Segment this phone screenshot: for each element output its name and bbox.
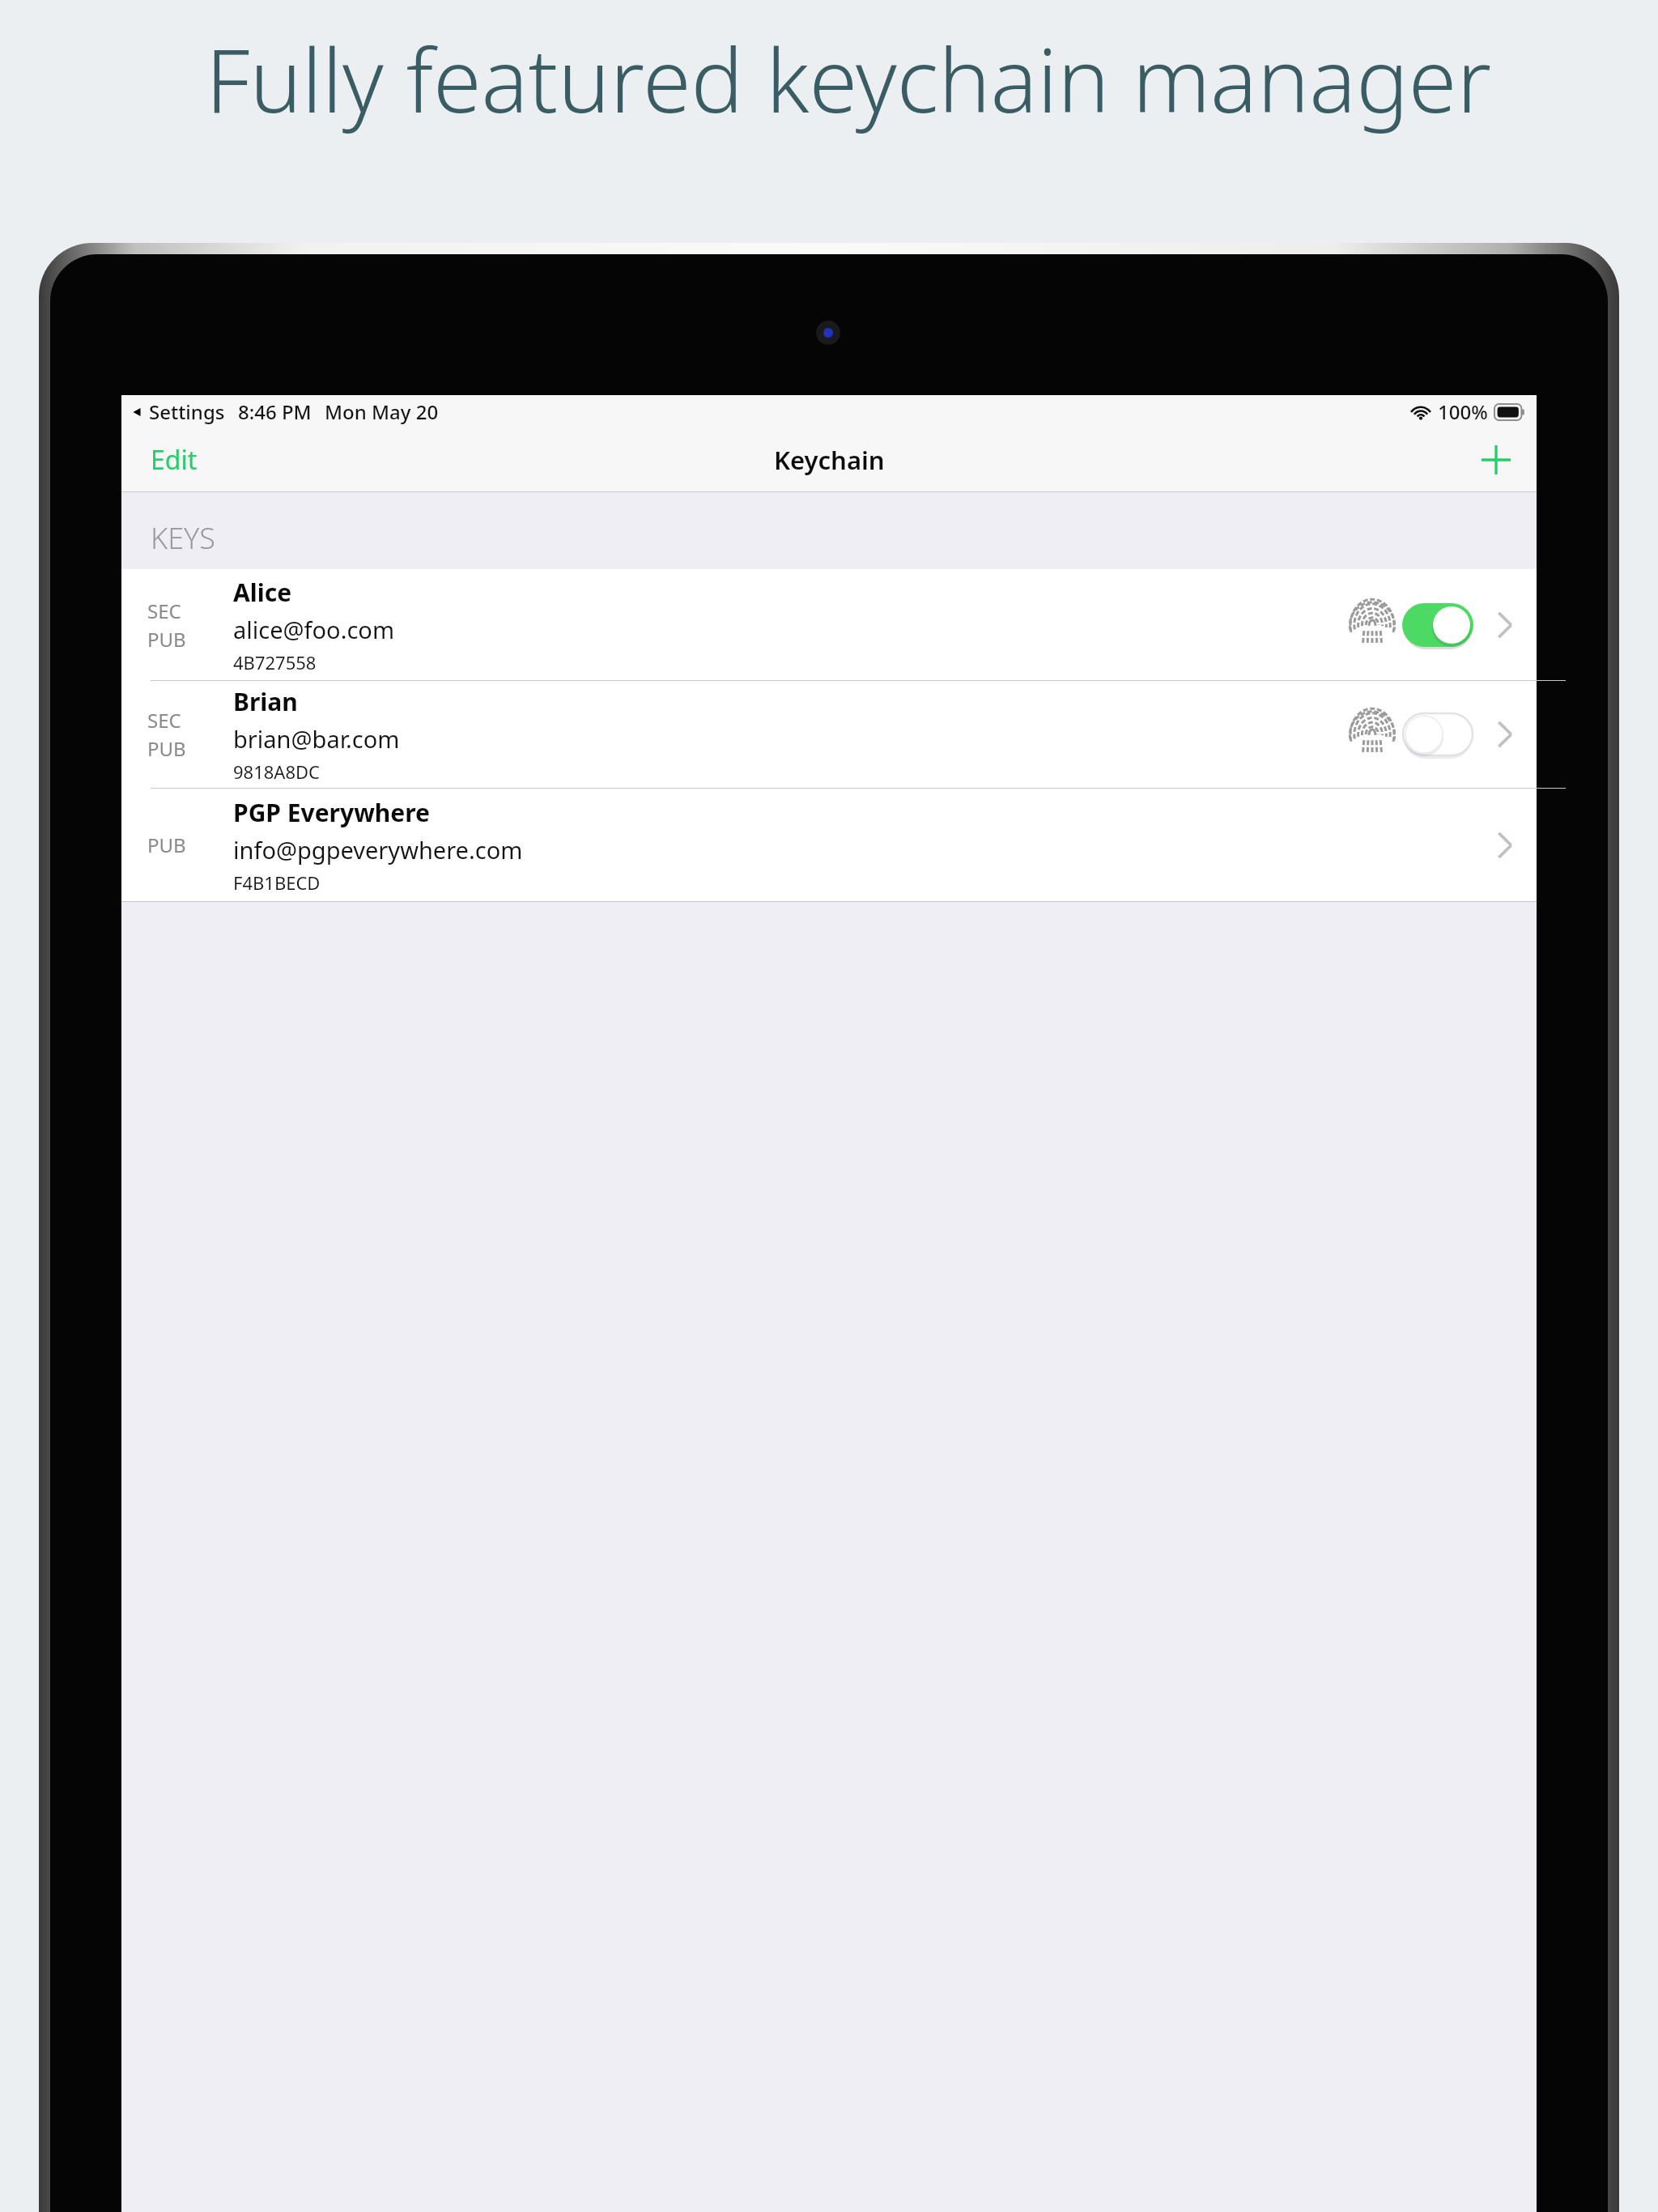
staticText: PUB [147,735,186,762]
staticText: alice@foo.com [233,614,394,645]
staticText: Keychain [774,443,885,477]
button[interactable]: PUB [121,789,1537,901]
button[interactable]: SEC [121,681,1537,788]
staticText: Edit [151,442,198,478]
staticText: F4B1BECD [233,870,321,895]
staticText: 4B727558 [233,650,317,674]
staticText: 9818A8DC [233,759,320,784]
staticText: Settings [149,398,225,425]
button[interactable]: Disabled [1402,713,1473,756]
button[interactable]: Biometric protected [1346,598,1399,652]
staticText: 100% [1438,398,1488,425]
staticText: Brian [233,685,298,718]
button[interactable]: Edit [121,431,227,489]
staticText: brian@bar.com [233,723,400,755]
button[interactable]: Biometric protected [1346,708,1399,761]
staticText: SEC [147,598,181,624]
staticText: Fully featured keychain manager [19,19,1658,138]
staticText: info@pgpeverywhere.com [233,834,523,866]
button[interactable]: Add key [1467,431,1525,489]
button[interactable]: SEC [121,569,1537,680]
staticText: SEC [147,707,181,734]
staticText: PUB [147,832,186,858]
staticText: 8:46 PM [238,398,312,425]
staticText: Mon May 20 [325,398,439,425]
staticText: KEYS [151,518,215,558]
staticText: PGP Everywhere [233,796,430,829]
staticText: PUB [147,626,186,653]
staticText: Alice [233,576,292,609]
button[interactable]: Enabled [1402,603,1473,647]
